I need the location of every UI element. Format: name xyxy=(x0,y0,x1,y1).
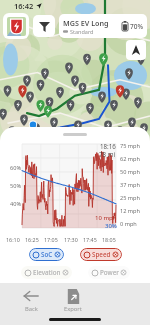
staticText: 25 mph xyxy=(120,194,140,202)
button[interactable]: Back xyxy=(10,286,52,315)
button[interactable]: Export xyxy=(52,287,94,315)
button[interactable]: Filter xyxy=(33,15,55,37)
staticText: 16:42 xyxy=(14,1,34,11)
staticText: 18:05 xyxy=(102,236,116,243)
staticText: Speed xyxy=(92,250,111,259)
staticText: 16:10 xyxy=(6,236,20,243)
staticText: MGS EV Long Range xyxy=(63,18,122,28)
staticText: 70% xyxy=(130,22,143,31)
button[interactable]: Compass xyxy=(126,40,146,60)
staticText: 16:25 xyxy=(25,236,39,243)
staticText: 0 mph xyxy=(120,220,137,228)
staticText: 62 mph xyxy=(120,155,140,163)
staticText: 78 mi xyxy=(99,150,116,158)
staticText: Export xyxy=(64,305,82,313)
staticText: 17:30 xyxy=(64,236,78,243)
staticText: 40% xyxy=(10,200,22,208)
button[interactable]: SoC xyxy=(29,248,64,261)
button[interactable]: Power xyxy=(88,266,130,279)
staticText: Back xyxy=(25,305,38,313)
staticText: Standard xyxy=(70,28,94,35)
staticText: 12 mph xyxy=(120,207,140,215)
button[interactable]: Speed xyxy=(80,248,122,261)
staticText: 10 mph xyxy=(95,214,117,222)
staticText: 50 mph xyxy=(120,168,140,176)
staticText: Elevation xyxy=(33,268,61,277)
staticText: 30% xyxy=(105,222,117,230)
staticText: 75 mph xyxy=(120,142,140,150)
staticText: 50% xyxy=(10,182,22,190)
button[interactable]: App xyxy=(3,13,29,39)
staticText: 60% xyxy=(10,164,22,172)
staticText: 17:05 xyxy=(44,236,58,243)
staticText: 18:16 xyxy=(100,142,116,150)
button[interactable]: MGS EV Long Range xyxy=(59,14,147,38)
staticText: SoC xyxy=(41,250,53,259)
button[interactable]: Elevation xyxy=(21,266,72,279)
staticText: 37 mph xyxy=(120,181,140,189)
staticText: Power xyxy=(100,268,119,277)
staticText: 17:45 xyxy=(83,236,97,243)
